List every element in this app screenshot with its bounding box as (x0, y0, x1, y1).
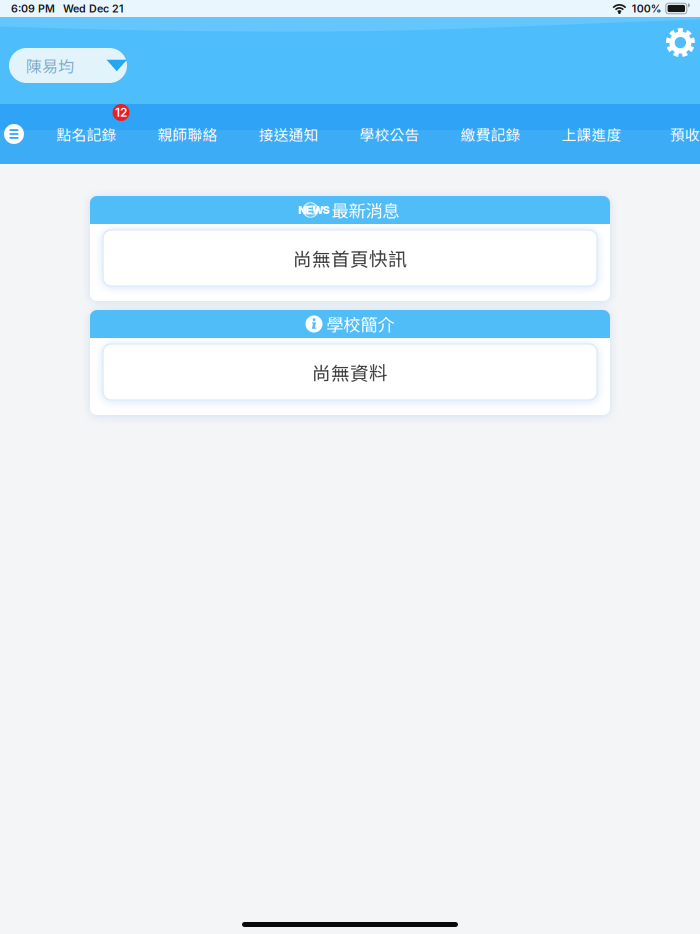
button[interactable]: 親師聯絡 (137, 104, 238, 164)
button[interactable]: Menu (0, 104, 36, 164)
button[interactable]: 學校公告 (339, 104, 440, 164)
staticText: 繳費記錄 (460, 123, 520, 145)
staticText: 學校公告 (359, 123, 419, 145)
staticText: 點名記錄 (56, 123, 116, 145)
button[interactable]: 繳費記錄 (440, 104, 541, 164)
staticText: 上課進度 (561, 123, 621, 145)
staticText: 最新消息 (331, 197, 399, 223)
staticText: 學校簡介 (326, 311, 394, 337)
button[interactable]: 點名記錄 (36, 104, 137, 164)
button[interactable]: 接送通知 (238, 104, 339, 164)
staticText: NEWS (298, 203, 330, 216)
button[interactable]: 上課進度 (541, 104, 642, 164)
staticText: 陳易均 (26, 54, 74, 77)
staticText: 12 (115, 105, 127, 120)
staticText: 親師聯絡 (157, 123, 217, 145)
staticText: Wed Dec 21 (63, 2, 124, 15)
staticText: 預收款 (670, 123, 700, 145)
staticText: 100% (632, 2, 662, 15)
staticText: 接送通知 (258, 123, 318, 145)
staticText: 6:09 PM (11, 2, 55, 15)
button[interactable]: 預收款 (642, 104, 700, 164)
staticText: 尚無資料 (312, 358, 388, 385)
button[interactable]: 陳易均 (9, 48, 127, 83)
staticText: 尚無首頁快訊 (293, 244, 407, 271)
button[interactable]: Settings (666, 28, 695, 57)
